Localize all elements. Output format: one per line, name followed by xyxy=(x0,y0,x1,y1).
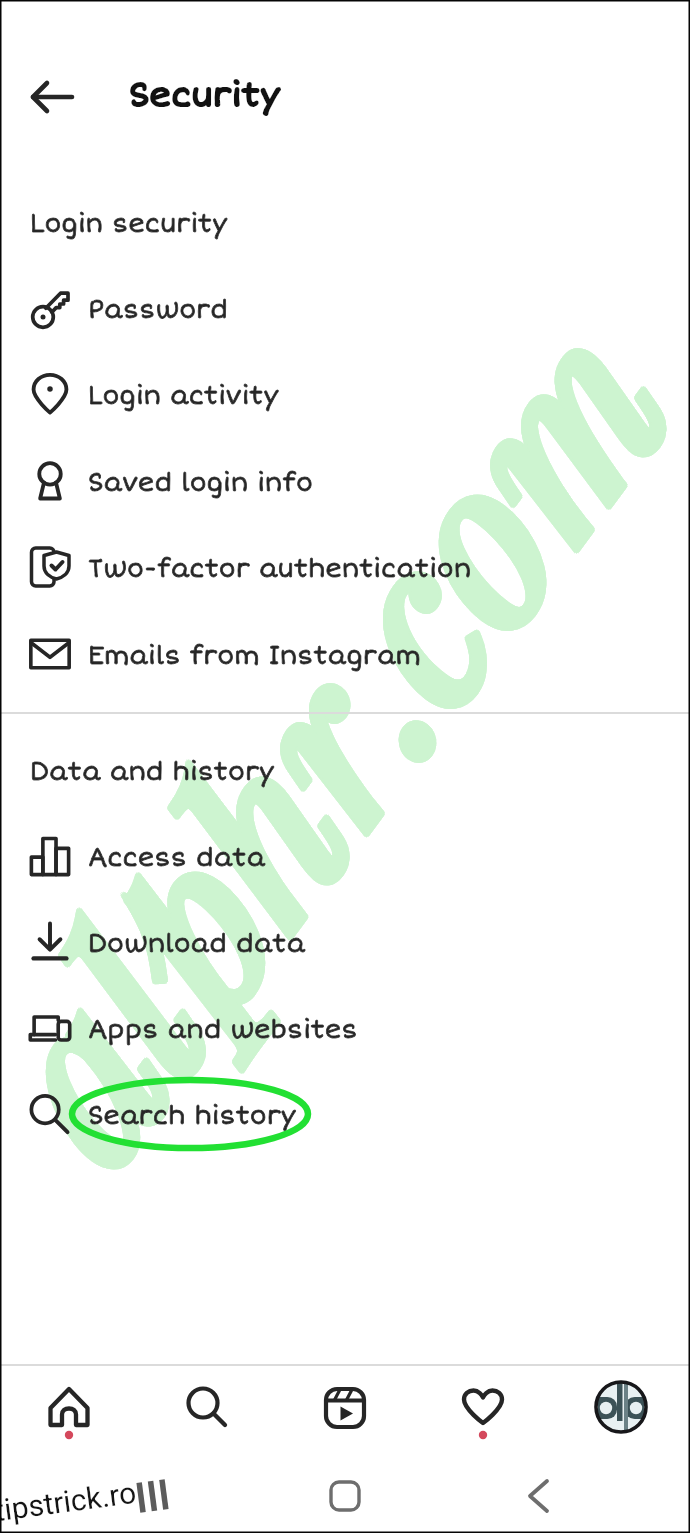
staticText: Download data xyxy=(88,929,306,960)
staticText: Emails from Instagram xyxy=(88,641,421,672)
staticText: Apps and websites xyxy=(88,1015,358,1046)
button[interactable]: Emails from Instagram xyxy=(0,611,690,697)
staticText: tipstrick.ro xyxy=(0,1475,139,1528)
button[interactable]: Two-factor authentication xyxy=(0,524,690,610)
staticText: Data and history xyxy=(30,757,274,788)
button[interactable]: Search xyxy=(168,1376,246,1454)
staticText: Apps and websites xyxy=(88,1015,358,1046)
staticText: Search history xyxy=(88,1101,296,1132)
button[interactable]: Reels xyxy=(306,1376,384,1454)
button[interactable]: Access data xyxy=(0,813,690,899)
button[interactable]: Back xyxy=(24,69,76,121)
staticText: Search history xyxy=(88,1101,296,1132)
staticText: Security xyxy=(129,75,280,116)
button[interactable]: Home xyxy=(30,1376,108,1454)
staticText: Password xyxy=(88,295,228,326)
button[interactable]: Search history xyxy=(0,1071,690,1157)
staticText: Password xyxy=(88,295,228,326)
button[interactable]: Saved login info xyxy=(0,438,690,524)
staticText: Access data xyxy=(88,843,266,874)
staticText: Login activity xyxy=(88,381,279,412)
button[interactable]: Apps and websites xyxy=(0,985,690,1071)
staticText: Saved login info xyxy=(88,468,313,499)
button[interactable]: Password xyxy=(0,265,690,351)
staticText: Login security xyxy=(30,209,228,240)
button[interactable]: Profile xyxy=(582,1376,660,1454)
staticText: Security xyxy=(129,75,280,116)
staticText: Download data xyxy=(88,929,306,960)
staticText: Access data xyxy=(88,843,266,874)
staticText: Two-factor authentication xyxy=(88,554,472,585)
button[interactable]: Activity xyxy=(444,1376,522,1454)
staticText: Data and history xyxy=(30,757,274,788)
staticText: Login security xyxy=(30,209,228,240)
button[interactable]: Download data xyxy=(0,899,690,985)
staticText: Login activity xyxy=(88,381,279,412)
button[interactable]: Login activity xyxy=(0,351,690,437)
staticText: Emails from Instagram xyxy=(88,641,421,672)
staticText: Two-factor authentication xyxy=(88,554,472,585)
staticText: Saved login info xyxy=(88,468,313,499)
